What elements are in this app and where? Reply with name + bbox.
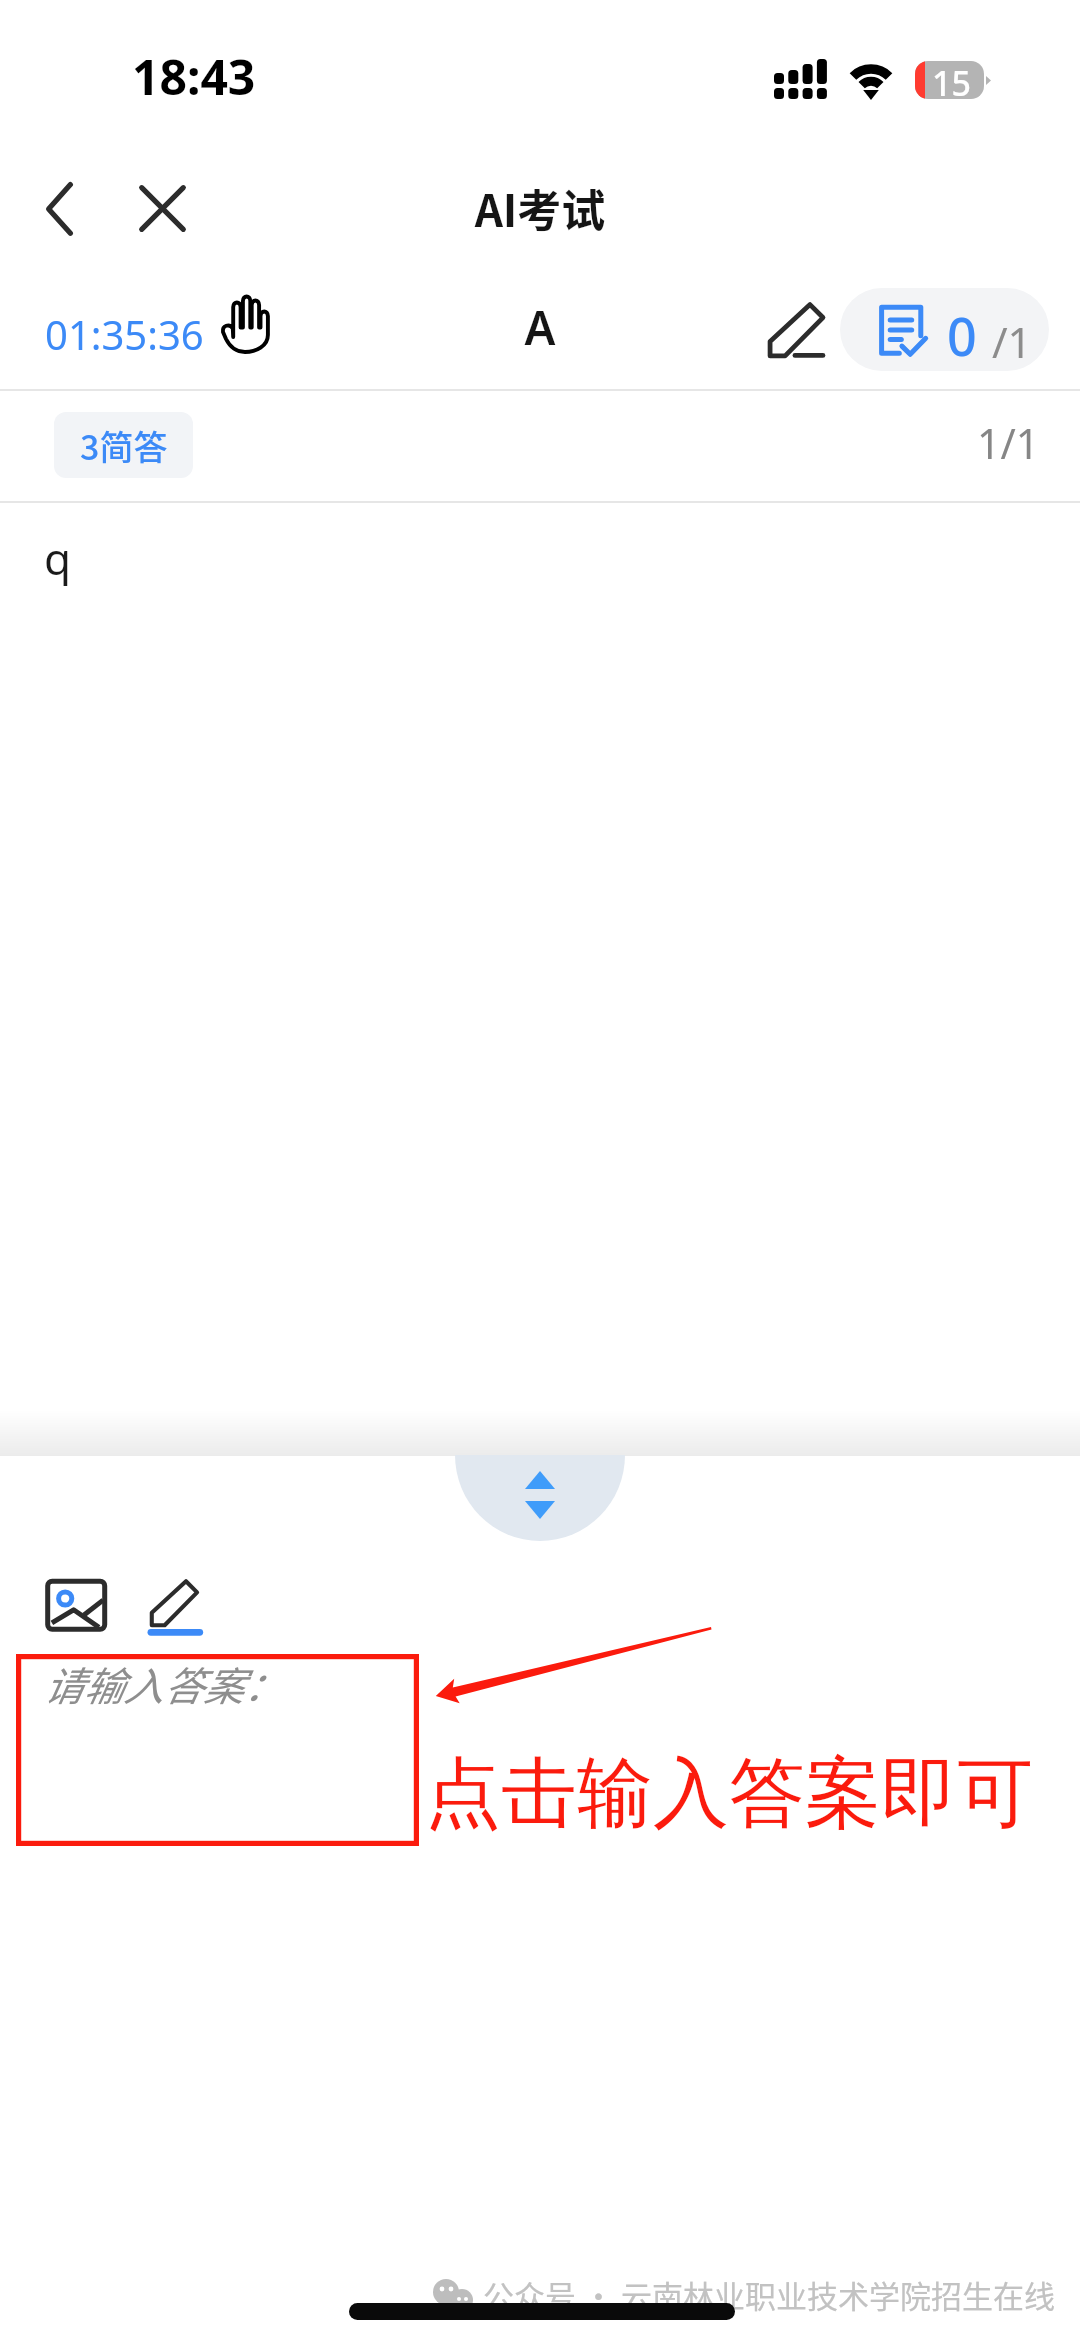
- staticText: /1: [992, 313, 1032, 370]
- staticText: 3简答: [80, 421, 168, 470]
- button[interactable]: 0: [840, 288, 1049, 371]
- button[interactable]: Close: [125, 171, 199, 245]
- staticText: 15: [932, 61, 971, 98]
- button[interactable]: 3简答: [54, 412, 193, 478]
- button[interactable]: Edit: [760, 294, 832, 366]
- staticText: 点击输入答案即可: [425, 1746, 1033, 1842]
- staticText: 0: [947, 300, 977, 371]
- staticText: 公众号 · 云南林业职业技术学院招生在线: [483, 2272, 1055, 2317]
- button[interactable]: Expand answer panel: [455, 1455, 625, 1541]
- button[interactable]: Pause: [206, 286, 282, 362]
- button[interactable]: Back: [23, 172, 97, 246]
- button[interactable]: 请输入答案：: [16, 1654, 419, 1846]
- staticText: 18:43: [132, 44, 256, 109]
- button[interactable]: Handwrite answer: [134, 1566, 214, 1646]
- staticText: 01:35:36: [45, 307, 204, 361]
- staticText: A: [0, 296, 1080, 359]
- staticText: AI考试: [0, 176, 1080, 240]
- staticText: 1/1: [977, 415, 1040, 471]
- staticText: q: [44, 528, 72, 588]
- staticText: 请输入答案：: [43, 1655, 283, 1713]
- button[interactable]: Add image: [37, 1570, 117, 1642]
